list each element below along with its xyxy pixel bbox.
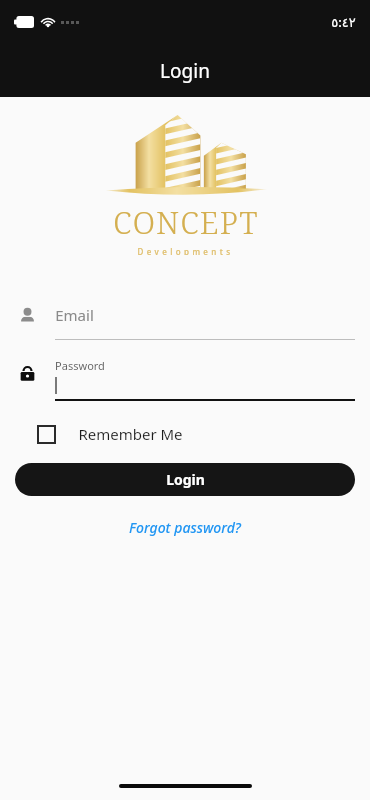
staticText: Developments [137, 246, 234, 255]
staticText: Email [55, 305, 94, 325]
staticText: Login [160, 58, 210, 84]
button[interactable]: Email [14, 300, 355, 340]
other: Email [18, 306, 37, 325]
staticText: Remember Me [78, 424, 183, 444]
staticText: Password [55, 358, 105, 373]
staticText: CONCEPT [113, 201, 259, 243]
button[interactable]: Login [15, 463, 355, 496]
button[interactable]: Password [14, 358, 355, 401]
button[interactable]: Forgot password? [123, 512, 247, 543]
button[interactable]: Remember Me [38, 418, 183, 450]
other: Password [18, 364, 37, 383]
staticText: Login [166, 470, 205, 489]
staticText: ٥:٤٢ [331, 13, 356, 31]
staticText: Forgot password? [129, 518, 241, 537]
